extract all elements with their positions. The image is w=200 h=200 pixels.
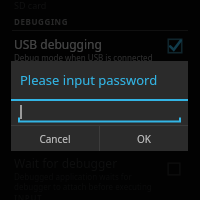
staticText: Wait for debugger [14,155,118,171]
staticText: OK [137,132,151,146]
staticText: Cancel [39,132,71,146]
button[interactable]: USB debugging [0,33,200,61]
button[interactable] [11,101,188,123]
staticText: SD card [14,0,47,11]
other: Wait for debugger checkbox [167,162,181,176]
button[interactable]: OK [100,126,188,151]
staticText: USB debugging [14,36,102,52]
staticText: Debug mode when USB is connected [14,52,153,63]
staticText: Please input password [20,71,158,89]
button[interactable]: Cancel [11,126,99,151]
staticText: DEBUGGING [14,16,69,27]
other: USB debugging checkbox [167,38,183,54]
